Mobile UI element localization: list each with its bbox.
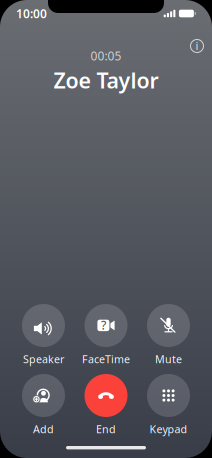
button[interactable]: Add xyxy=(22,374,65,417)
button[interactable]: Mute xyxy=(147,304,190,347)
staticText: FaceTime xyxy=(82,352,130,366)
button[interactable]: Keypad xyxy=(147,374,190,417)
button[interactable]: Call details xyxy=(184,33,210,59)
staticText: Keypad xyxy=(149,422,187,436)
staticText: 10:00 xyxy=(16,5,47,21)
staticText: 00:05 xyxy=(90,48,121,64)
button[interactable]: Speaker xyxy=(22,304,65,347)
staticText: Add xyxy=(33,422,54,436)
button[interactable]: ? xyxy=(84,304,127,347)
staticText: Zoe Taylor xyxy=(53,66,158,94)
staticText: Speaker xyxy=(23,352,64,366)
staticText: Mute xyxy=(155,352,182,366)
staticText: ? xyxy=(101,317,106,333)
staticText: i xyxy=(195,39,198,53)
staticText: End xyxy=(96,422,116,436)
button[interactable]: End xyxy=(84,374,127,417)
